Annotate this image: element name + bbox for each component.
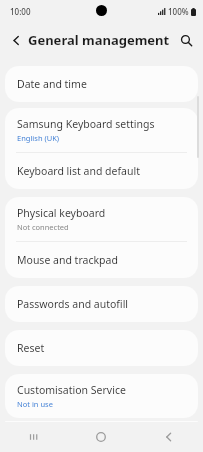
button[interactable]: Samsung Keyboard settings: [5, 108, 198, 152]
button[interactable]: Search: [174, 28, 198, 52]
button[interactable]: Customisation Service: [5, 374, 198, 418]
button[interactable]: Physical keyboard: [5, 197, 198, 241]
staticText: Passwords and autofill: [17, 297, 129, 311]
staticText: Date and time: [17, 77, 87, 91]
staticText: Samsung Keyboard settings: [17, 117, 155, 131]
staticText: General management: [28, 31, 170, 49]
button[interactable]: Home: [67, 422, 135, 452]
staticText: Physical keyboard: [17, 206, 106, 220]
staticText: Not connected: [17, 222, 69, 232]
button[interactable]: Passwords and autofill: [5, 286, 198, 322]
staticText: English (UK): [17, 133, 60, 143]
button[interactable]: Back: [135, 422, 203, 452]
button[interactable]: Recent apps: [0, 422, 67, 452]
button[interactable]: Mouse and trackpad: [5, 242, 198, 278]
staticText: Customisation Service: [17, 383, 126, 397]
staticText: Keyboard list and default: [17, 164, 140, 178]
staticText: Mouse and trackpad: [17, 253, 118, 267]
button[interactable]: Date and time: [5, 66, 198, 102]
staticText: Reset: [17, 341, 45, 355]
staticText: 10:00: [10, 6, 31, 17]
button[interactable]: Reset: [5, 330, 198, 366]
button[interactable]: Keyboard list and default: [5, 153, 198, 189]
staticText: 100%: [168, 6, 189, 17]
staticText: Not in use: [17, 399, 53, 409]
button[interactable]: Navigate up: [4, 28, 28, 52]
